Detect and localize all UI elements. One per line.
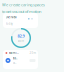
button[interactable]: Morning walk: [3, 50, 38, 56]
staticText: Today: [5, 22, 12, 25]
staticText: We create caring spaces: [2, 2, 45, 7]
staticText: 20m: [29, 51, 35, 55]
staticText: Start session: [12, 56, 17, 60]
button[interactable]: Overview: [3, 13, 38, 28]
staticText: Tap to begin: [12, 61, 17, 65]
button[interactable]: Start session: [3, 56, 38, 65]
staticText: Morning walk: [9, 51, 18, 55]
staticText: Overview: [5, 15, 16, 19]
staticText: score: [17, 39, 24, 43]
staticText: 82.9: [17, 33, 24, 39]
staticText: to get you out of motion: [2, 9, 41, 14]
